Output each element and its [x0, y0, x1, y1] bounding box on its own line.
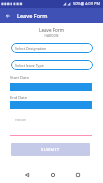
- button[interactable]: Back: [2, 9, 14, 22]
- staticText: Leave Form: [17, 12, 48, 19]
- button[interactable]: Back: [19, 169, 34, 181]
- staticText: 50%: [73, 1, 81, 6]
- button[interactable]: Select leave Type: [11, 60, 93, 70]
- staticText: HAROON: [0, 34, 103, 40]
- staticText: End Date: [10, 95, 28, 100]
- staticText: Select leave Type: [15, 63, 44, 68]
- staticText: Start Date: [10, 75, 29, 80]
- button[interactable]: SUBMIT: [11, 143, 90, 156]
- staticText: SUBMIT: [41, 147, 60, 153]
- staticText: Leave Form: [0, 27, 103, 34]
- staticText: 4:09 PM: [85, 1, 101, 6]
- button[interactable]: Recent apps: [70, 169, 85, 181]
- button[interactable]: Select Designation: [11, 43, 93, 53]
- button[interactable]: Home: [45, 169, 60, 181]
- staticText: reason: [15, 117, 27, 122]
- staticText: Select Designation: [15, 46, 47, 51]
